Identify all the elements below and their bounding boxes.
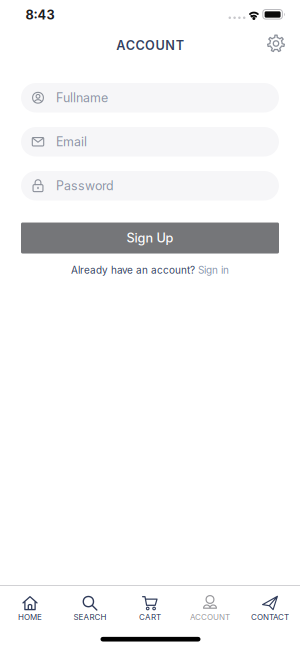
- staticText: Password: [56, 178, 114, 193]
- button[interactable]: CART: [120, 596, 180, 622]
- staticText: Already have an account?: [71, 264, 195, 276]
- staticText: CART: [139, 612, 161, 622]
- button[interactable]: ACCOUNT: [180, 596, 240, 622]
- button[interactable]: SEARCH: [60, 596, 120, 622]
- staticText: HOME: [18, 612, 42, 622]
- staticText: 8:43: [25, 7, 54, 23]
- button[interactable]: [266, 34, 285, 53]
- staticText: SEARCH: [73, 612, 106, 622]
- staticText: ACCOUNT: [116, 38, 184, 53]
- staticText: Email: [56, 134, 87, 149]
- button[interactable]: Password: [21, 171, 279, 200]
- staticText: Sign in: [198, 264, 229, 276]
- staticText: ACCOUNT: [190, 612, 230, 622]
- button[interactable]: HOME: [0, 596, 60, 622]
- button[interactable]: Sign Up: [21, 222, 279, 253]
- button[interactable]: Fullname: [21, 83, 279, 112]
- staticText: Sign Up: [126, 230, 173, 246]
- button[interactable]: Already have an account?: [71, 264, 229, 276]
- staticText: CONTACT: [251, 612, 289, 622]
- button[interactable]: Email: [21, 127, 279, 156]
- staticText: Fullname: [56, 90, 108, 105]
- button[interactable]: CONTACT: [240, 596, 300, 622]
